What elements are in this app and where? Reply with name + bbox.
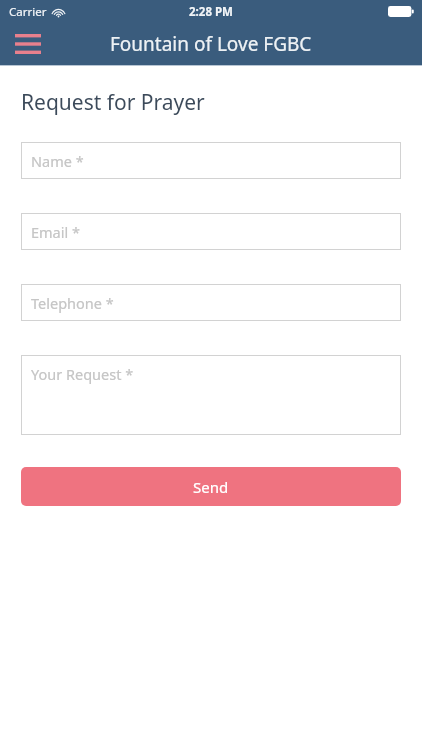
button[interactable]: Name *: [21, 142, 401, 179]
button[interactable]: Open navigation menu: [6, 23, 50, 65]
staticText: Telephone *: [31, 293, 114, 313]
staticText: Request for Prayer: [21, 88, 205, 117]
button[interactable]: Send: [21, 467, 401, 506]
staticText: Send: [193, 477, 229, 497]
staticText: Name *: [31, 151, 84, 171]
staticText: Email *: [31, 222, 80, 242]
button[interactable]: Telephone *: [21, 284, 401, 321]
staticText: 2:28 PM: [189, 4, 233, 20]
staticText: Your Request *: [31, 364, 134, 384]
staticText: Fountain of Love FGBC: [110, 31, 312, 57]
button[interactable]: Your Request *: [21, 355, 401, 435]
button[interactable]: Email *: [21, 213, 401, 250]
staticText: Carrier: [9, 4, 47, 20]
